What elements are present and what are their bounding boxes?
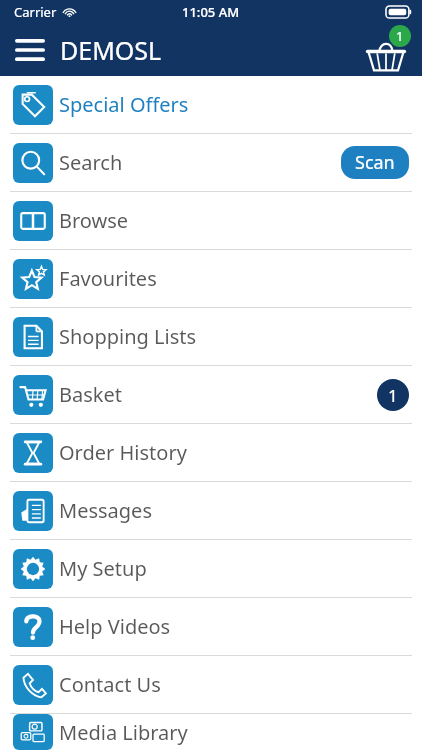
button[interactable]: Special Offers [0,76,422,133]
button[interactable]: Basket [360,24,412,76]
staticText: Search [59,149,123,176]
button[interactable]: Browse [0,192,422,249]
staticText: Special Offers [59,91,189,118]
staticText: Help Videos [59,613,171,640]
staticText: Browse [59,207,129,234]
button[interactable]: Media Library [0,714,422,750]
staticText: Scan [355,150,395,175]
staticText: 1 [396,27,404,45]
button[interactable]: Menu [8,28,52,72]
staticText: My Setup [59,555,147,582]
button[interactable]: My Setup [0,540,422,597]
button[interactable]: Contact Us [0,656,422,713]
button[interactable]: Basket [0,366,422,423]
staticText: Media Library [59,719,188,746]
button[interactable]: Messages [0,482,422,539]
staticText: Order History [59,439,187,466]
staticText: Shopping Lists [59,323,197,350]
staticText: Basket [59,381,122,408]
button[interactable]: Help Videos [0,598,422,655]
button[interactable]: Scan [341,146,409,179]
staticText: Favourites [59,265,157,292]
button[interactable]: Search [0,134,422,191]
staticText: Carrier [14,3,57,21]
button[interactable]: Shopping Lists [0,308,422,365]
staticText: Messages [59,497,152,524]
button[interactable]: Favourites [0,250,422,307]
staticText: 1 [388,384,398,407]
staticText: Contact Us [59,671,161,698]
staticText: DEMOSL [60,33,162,67]
staticText: 11:05 AM [182,3,240,21]
button[interactable]: Order History [0,424,422,481]
